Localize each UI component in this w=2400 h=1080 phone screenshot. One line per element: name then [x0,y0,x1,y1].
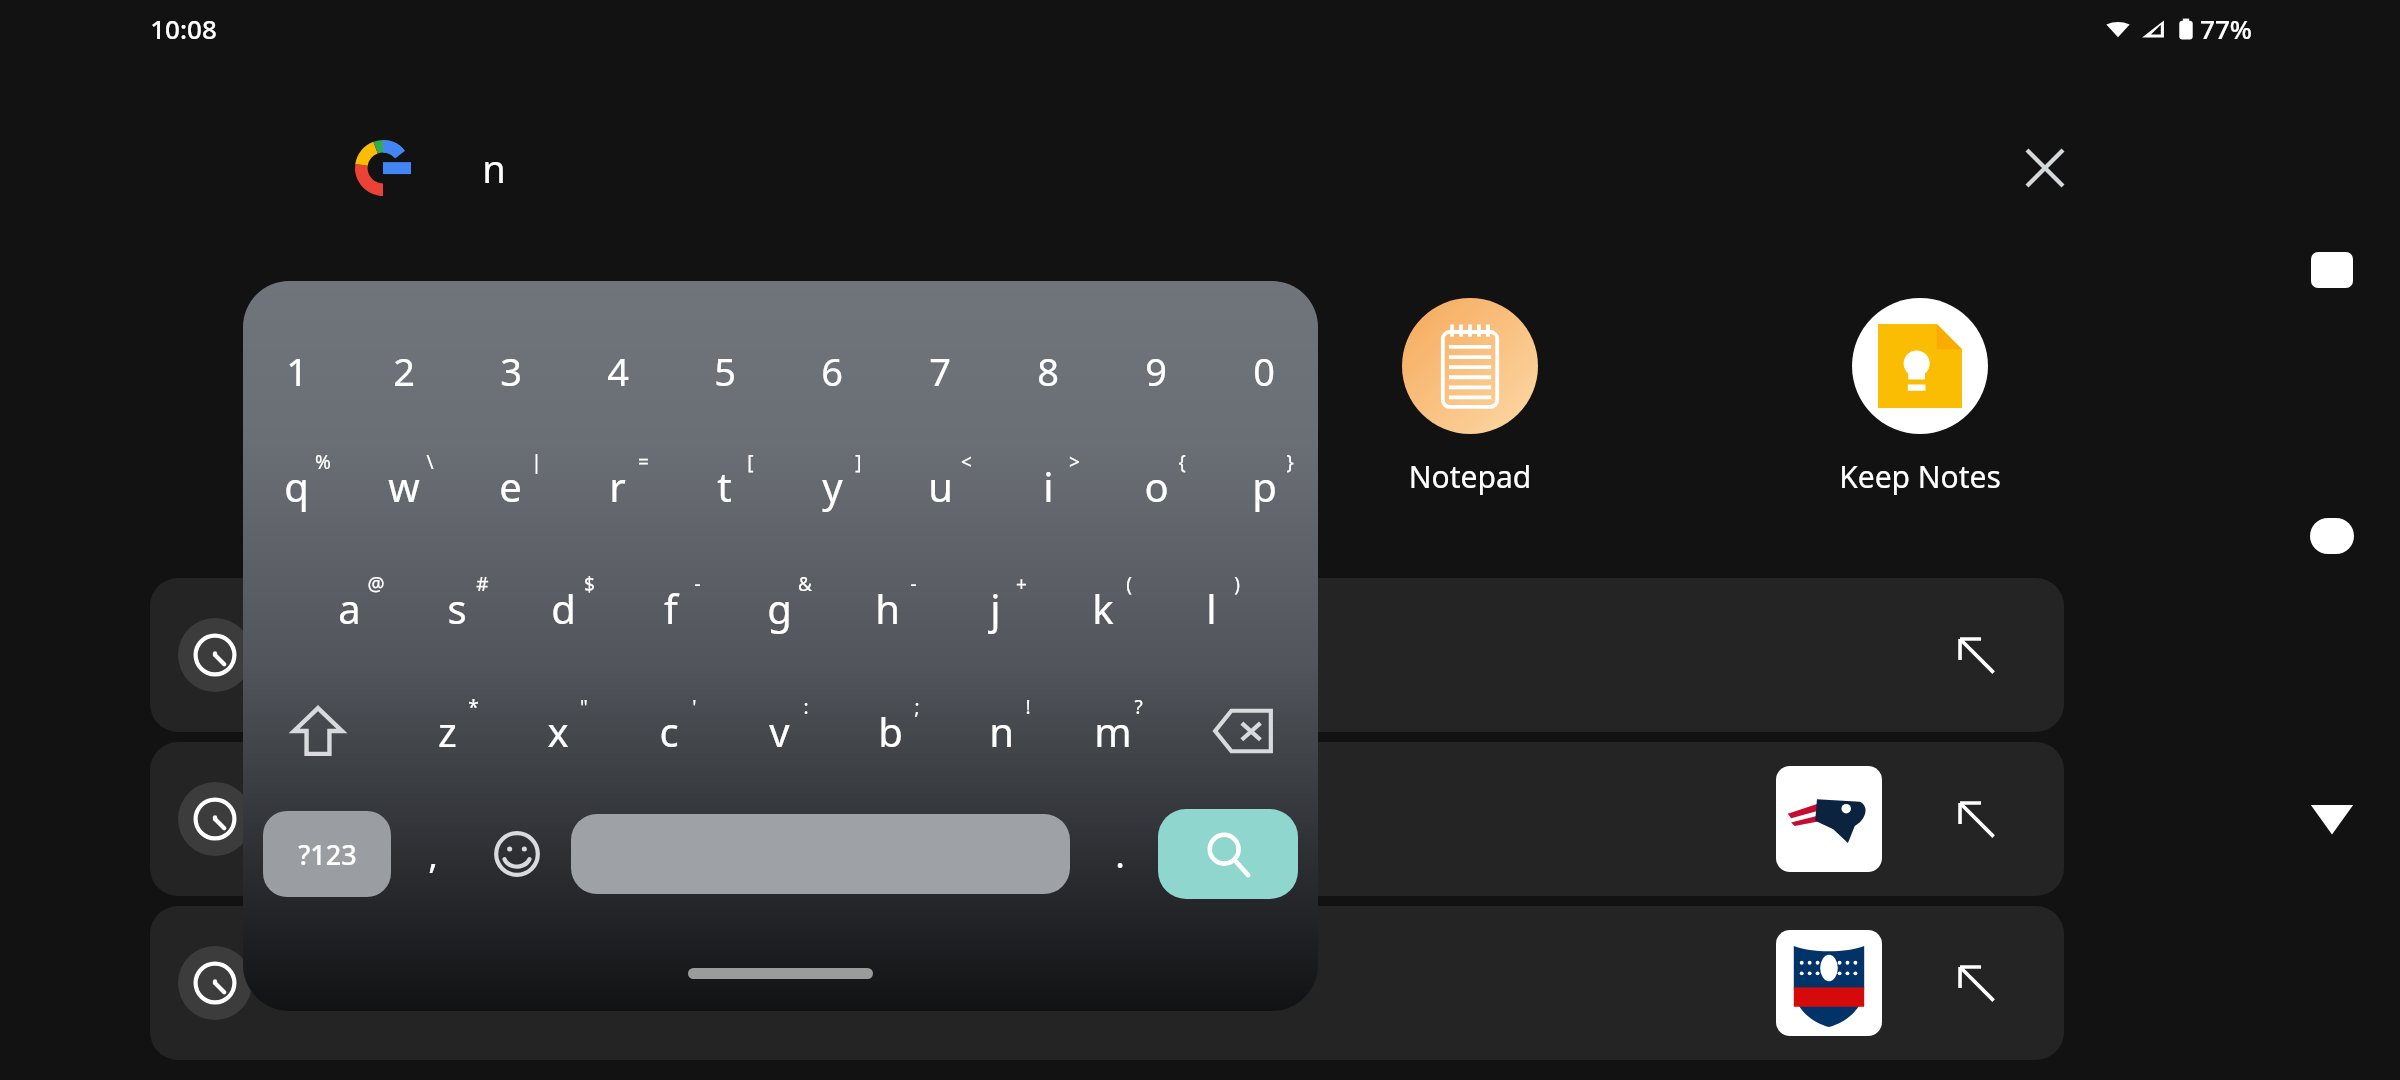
staticText: [ [747,449,754,475]
staticText: i [1043,459,1054,513]
button[interactable]: 1 [243,326,350,416]
staticText: 1 [286,345,308,397]
button[interactable]: . [1082,799,1158,909]
button[interactable]: v [724,686,835,776]
staticText: | [531,449,542,475]
button[interactable]: Emoji [475,799,559,909]
staticText: < [961,449,972,475]
button[interactable]: a [296,563,403,653]
button[interactable]: 6 [778,326,886,416]
button[interactable]: Google [355,140,411,196]
button[interactable]: 8 [994,326,1102,416]
staticText: 2 [393,345,415,397]
button[interactable]: 2 [350,326,457,416]
button[interactable]: m [1057,686,1168,776]
button[interactable]: y [778,441,886,531]
staticText: f [664,581,678,635]
staticText: y [822,459,843,513]
staticText: # [476,571,489,597]
staticText: - [910,571,917,597]
button[interactable]: ?123 [263,811,391,897]
button[interactable]: Home [2294,498,2370,574]
button[interactable]: Insert suggestion [150,578,2064,732]
staticText: o [1144,459,1169,513]
button[interactable]: Insert suggestion [1946,789,2006,849]
staticText: 3 [500,345,522,397]
staticText: $ [584,571,595,597]
button[interactable]: f [617,563,725,653]
staticText: d [551,581,576,635]
button[interactable]: Close search [2010,133,2080,203]
button[interactable]: c [613,686,724,776]
button[interactable]: z [392,686,502,776]
button[interactable]: w [350,441,457,531]
button[interactable]: l [1157,563,1265,653]
staticText: ] [855,449,862,475]
staticText: 8 [1037,345,1059,397]
staticText: w [388,459,420,513]
staticText: c [659,704,679,758]
button[interactable]: r [564,441,671,531]
button[interactable]: b [835,686,946,776]
button[interactable]: e [457,441,564,531]
button[interactable]: 3 [457,326,564,416]
staticText: z [438,704,457,758]
staticText: u [928,459,953,513]
button[interactable]: s [403,563,510,653]
button[interactable]: h [833,563,941,653]
staticText: v [769,704,790,758]
staticText: , [428,830,438,879]
button[interactable]: NFL [150,906,2064,1060]
staticText: ; [914,694,920,720]
button[interactable]: i [994,441,1102,531]
button[interactable]: 4 [564,326,671,416]
button[interactable]: 5 [671,326,778,416]
staticText: @ [367,571,385,597]
button[interactable]: q [243,441,350,531]
staticText: h [875,581,900,635]
button[interactable]: Insert suggestion [150,742,2064,896]
button[interactable]: Shift [243,686,392,776]
button[interactable]: Insert suggestion [1946,625,2006,685]
button[interactable]: j [941,563,1049,653]
button[interactable]: x [502,686,613,776]
staticText: n [989,704,1014,758]
button[interactable]: t [671,441,778,531]
button[interactable]: g [725,563,833,653]
staticText: ) [1234,571,1240,597]
button[interactable]: o [1102,441,1210,531]
staticText: r [609,459,626,513]
button[interactable]: Backspace [1168,686,1318,776]
button[interactable]: d [510,563,617,653]
button[interactable]: p [1210,441,1318,531]
button[interactable]: Back [2294,780,2370,856]
button[interactable]: 9 [1102,326,1210,416]
staticText: b [878,704,903,758]
button[interactable]: Keep Notes [1820,298,2020,497]
staticText: Keep Notes [1820,456,2020,497]
staticText: 0 [1253,345,1275,397]
staticText: q [284,459,309,513]
staticText: - [694,571,701,597]
button[interactable]: k [1049,563,1157,653]
staticText: { [1178,449,1186,475]
button[interactable]: Recents [2294,232,2370,308]
staticText: > [1069,449,1080,475]
button[interactable]: u [886,441,994,531]
staticText: n [482,142,506,194]
button[interactable]: n [946,686,1057,776]
button[interactable]: 0 [1210,326,1318,416]
button[interactable]: Space [571,814,1070,894]
button[interactable]: Insert suggestion [1946,953,2006,1013]
button[interactable]: Notepad [1370,298,1570,497]
staticText: 5 [714,345,736,397]
button[interactable]: Search [1158,809,1298,899]
staticText: & [798,571,812,597]
staticText: = [638,449,649,475]
staticText: ! [1025,694,1031,720]
staticText: 7 [929,345,951,397]
button[interactable]: 7 [886,326,994,416]
staticText: % [315,449,331,475]
button[interactable]: , [391,799,475,909]
